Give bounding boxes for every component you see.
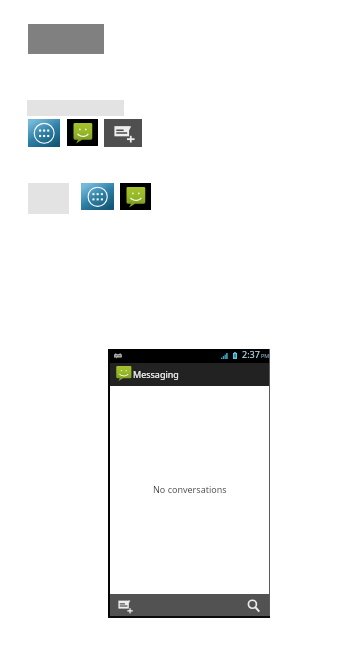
button[interactable]: New message [104,119,142,147]
button[interactable]: All apps [28,119,60,147]
staticText: PM [261,352,270,359]
staticText: No conversations [153,483,227,495]
button[interactable]: New message [111,595,138,617]
staticText: Messaging [133,368,179,380]
staticText: 2:37 [242,348,260,360]
button[interactable]: Messaging [67,119,98,146]
button[interactable]: Search [246,598,262,614]
button[interactable]: All apps [81,183,114,210]
button[interactable]: Messaging [120,183,151,210]
button[interactable]: Messaging [110,363,269,386]
